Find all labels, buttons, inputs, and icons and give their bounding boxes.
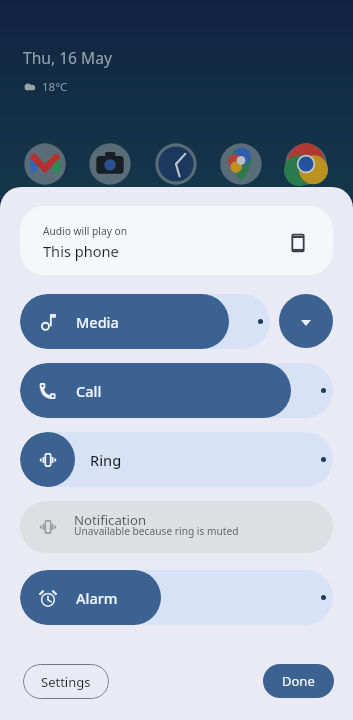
button[interactable]: Alarm: [20, 570, 333, 625]
staticText: Done: [282, 672, 315, 690]
button[interactable]: Settings: [23, 664, 109, 699]
staticText: Unavailable because ring is muted: [74, 524, 239, 538]
staticText: Alarm: [76, 588, 118, 608]
staticText: Call: [76, 381, 102, 401]
staticText: Media: [76, 312, 119, 332]
button[interactable]: Call: [20, 363, 333, 418]
staticText: Thu, 16 May: [23, 47, 112, 68]
staticText: 18°C: [42, 79, 68, 95]
button[interactable]: Notification: [20, 501, 333, 553]
staticText: Settings: [41, 673, 91, 691]
button[interactable]: Expand: [279, 294, 333, 348]
button[interactable]: Audio will play on: [20, 206, 333, 275]
button[interactable]: Ring: [20, 432, 333, 487]
staticText: Audio will play on: [43, 224, 127, 238]
staticText: Ring: [90, 450, 122, 470]
staticText: Notification: [74, 511, 147, 529]
button[interactable]: Done: [263, 664, 334, 698]
button[interactable]: Media: [20, 294, 270, 349]
staticText: This phone: [43, 241, 119, 261]
